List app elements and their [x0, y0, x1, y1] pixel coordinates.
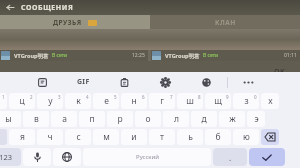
button[interactable]: Stickers [22, 72, 63, 92]
staticText: ДРУЗЬЯ [53, 18, 82, 27]
staticText: щ [214, 95, 222, 107]
button[interactable]: й [0, 93, 7, 109]
staticText: 2 [30, 94, 33, 100]
button[interactable]: д [191, 111, 217, 127]
staticText: з [244, 95, 249, 107]
button[interactable]: а [51, 111, 77, 127]
staticText: ?123 [0, 152, 13, 162]
button[interactable]: к [65, 93, 91, 109]
staticText: 0 [254, 94, 257, 100]
button[interactable]: э [247, 111, 265, 127]
staticText: у [48, 95, 53, 107]
staticText: VTGroup明君 [165, 52, 200, 60]
button[interactable]: OK [274, 67, 286, 77]
button[interactable]: ь [177, 129, 203, 145]
staticText: х [268, 95, 273, 107]
button[interactable]: ы [0, 111, 21, 127]
button[interactable]: Voice input [23, 148, 51, 166]
button[interactable]: б [205, 129, 231, 145]
button[interactable]: т [149, 129, 175, 145]
button[interactable]: Themes [186, 72, 227, 92]
button[interactable]: Enter [249, 148, 285, 166]
staticText: г [160, 95, 164, 107]
button[interactable]: Settings [145, 72, 186, 92]
button[interactable]: х [261, 93, 279, 109]
button[interactable]: г [149, 93, 175, 109]
button[interactable]: Clipboard [104, 72, 145, 92]
staticText: р [117, 113, 123, 125]
button[interactable]: ш [177, 93, 203, 109]
staticText: с [76, 131, 81, 143]
staticText: ю [243, 131, 250, 143]
staticText: В сети [52, 52, 68, 59]
button[interactable]: у [37, 93, 63, 109]
button[interactable]: щ [205, 93, 231, 109]
staticText: д [201, 113, 207, 125]
button[interactable]: Backspace [261, 129, 279, 145]
button[interactable]: я [9, 129, 35, 145]
button[interactable]: ?123 [0, 148, 21, 166]
staticText: VTGroup明君 [14, 52, 49, 60]
button[interactable]: п [79, 111, 105, 127]
staticText: 6 [142, 94, 145, 100]
button[interactable]: и [121, 129, 147, 145]
staticText: 5 [114, 94, 117, 100]
staticText: 3 [58, 94, 61, 100]
button[interactable]: л [163, 111, 189, 127]
button[interactable]: н [121, 93, 147, 109]
button[interactable]: р [107, 111, 133, 127]
button[interactable]: Русский [83, 148, 211, 166]
staticText: КЛАН [215, 18, 236, 27]
staticText: е [104, 95, 109, 107]
button[interactable]: КЛАН [150, 15, 300, 29]
staticText: ы [5, 113, 12, 125]
button[interactable]: ч [37, 129, 63, 145]
staticText: В сети [203, 52, 219, 59]
button[interactable]: е [93, 93, 119, 109]
staticText: 4 [86, 94, 89, 100]
staticText: э [254, 113, 259, 125]
button[interactable]: VTGroup明君 [0, 50, 148, 61]
button[interactable]: VTGroup明君 [151, 50, 300, 61]
staticText: . [229, 152, 232, 163]
button[interactable]: м [93, 129, 119, 145]
button[interactable]: GIF [63, 72, 104, 92]
button[interactable]: Change language [53, 148, 81, 166]
button[interactable]: о [135, 111, 161, 127]
staticText: ь [188, 131, 193, 143]
button[interactable]: ДРУЗЬЯ [0, 15, 150, 29]
staticText: и [131, 131, 137, 143]
staticText: а [62, 113, 67, 125]
button[interactable]: з [233, 93, 259, 109]
staticText: о [145, 113, 151, 125]
staticText: л [174, 113, 179, 125]
staticText: м [103, 131, 110, 143]
staticText: 01:11 [284, 52, 297, 59]
staticText: к [76, 95, 81, 107]
staticText: 7 [170, 94, 173, 100]
staticText: OK [274, 67, 286, 77]
staticText: 1 [2, 94, 5, 100]
staticText: н [131, 95, 137, 107]
button[interactable]: с [65, 129, 91, 145]
button[interactable]: ц [9, 93, 35, 109]
staticText: СООБЩЕНИЯ [21, 3, 74, 13]
staticText: б [215, 131, 221, 143]
staticText: GIF [77, 77, 90, 87]
staticText: п [89, 113, 95, 125]
staticText: 9 [226, 94, 229, 100]
staticText: ж [229, 113, 236, 125]
staticText: ц [19, 95, 25, 107]
button[interactable]: Back [5, 2, 16, 13]
button[interactable]: More options [228, 72, 269, 92]
staticText: в [34, 113, 39, 125]
button[interactable]: ж [219, 111, 245, 127]
button[interactable]: ю [233, 129, 259, 145]
staticText: т [160, 131, 164, 143]
staticText: ш [186, 95, 194, 107]
button[interactable]: . [213, 148, 247, 166]
button[interactable]: в [23, 111, 49, 127]
staticText: 8 [198, 94, 201, 100]
staticText: 12:25 [132, 52, 145, 59]
